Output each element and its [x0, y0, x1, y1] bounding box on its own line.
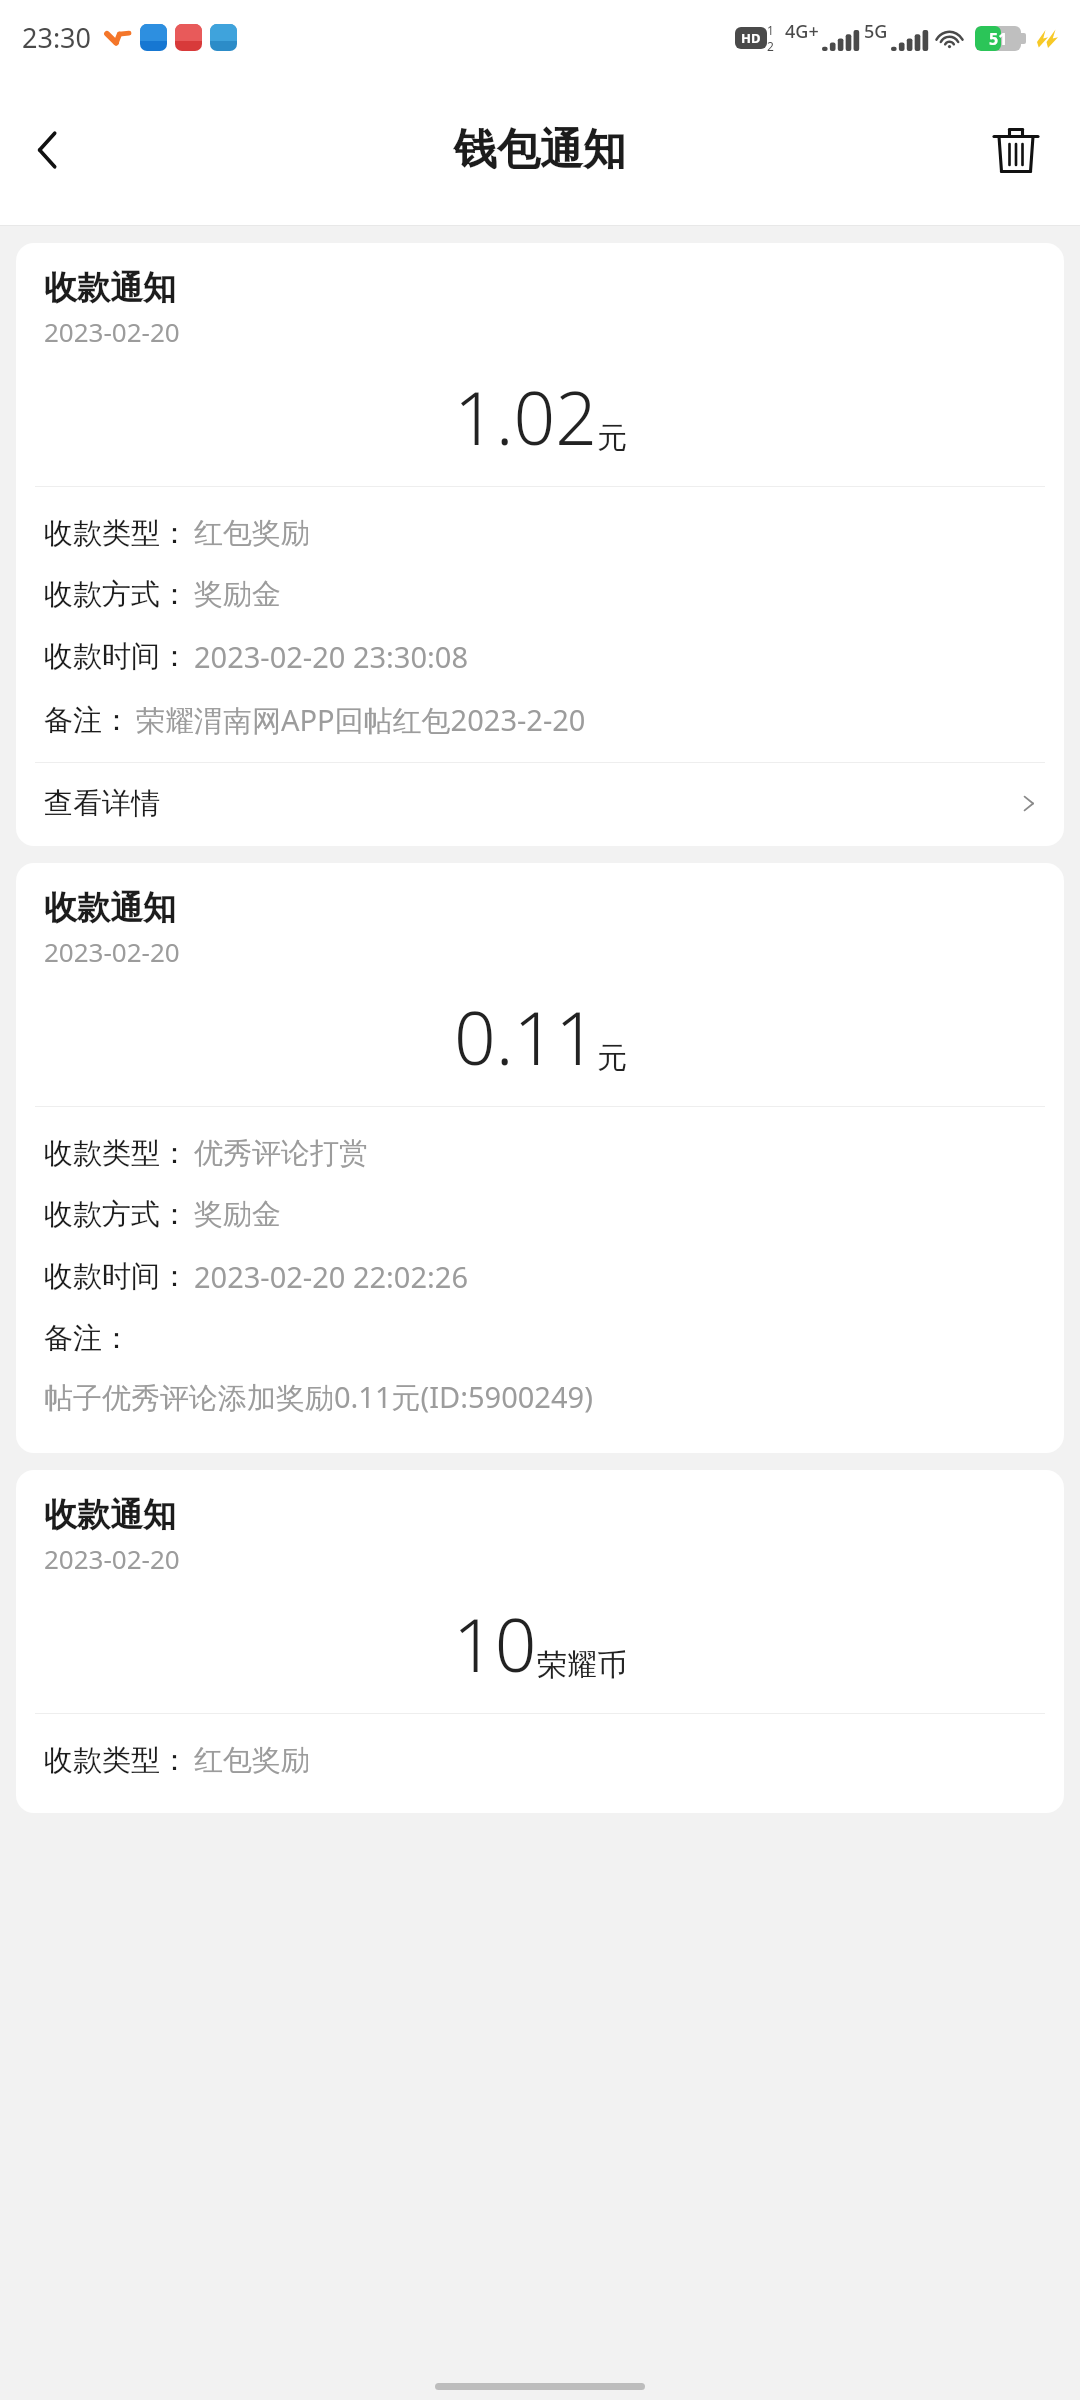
staticText: 2023-02-20 23:30:08	[194, 637, 468, 676]
staticText: 0.11	[454, 987, 597, 1086]
staticText: 收款方式：	[44, 1196, 189, 1233]
staticText: 备注：	[44, 1320, 131, 1357]
staticText: 1.02	[454, 367, 597, 466]
staticText: 元	[597, 419, 627, 457]
staticText: 5G	[864, 19, 888, 44]
staticText: 4G+	[785, 19, 819, 44]
staticText: 红包奖励	[194, 1742, 310, 1779]
staticText: 备注：	[44, 702, 131, 739]
staticText: 1	[767, 22, 774, 38]
staticText: 收款通知	[44, 887, 176, 929]
staticText: 收款类型：	[44, 1742, 189, 1779]
staticText: HD	[741, 29, 761, 47]
staticText: 2023-02-20	[44, 934, 180, 969]
staticText: 2023-02-20	[44, 314, 180, 349]
staticText: 收款方式：	[44, 576, 189, 613]
button[interactable]: 收款通知	[16, 1470, 1064, 1813]
staticText: 收款类型：	[44, 1135, 189, 1172]
staticText: 23:30	[22, 19, 92, 56]
staticText: 荣耀渭南网APP回帖红包2023-2-20	[136, 700, 586, 740]
staticText: 元	[597, 1039, 627, 1077]
button[interactable]: 收款通知	[16, 863, 1064, 1453]
staticText: 收款类型：	[44, 515, 189, 552]
staticText: 收款通知	[44, 1494, 176, 1536]
staticText: 奖励金	[194, 576, 281, 613]
button[interactable]: Delete	[972, 106, 1060, 194]
staticText: 优秀评论打赏	[194, 1135, 368, 1172]
button[interactable]: Back	[0, 102, 96, 198]
staticText: 红包奖励	[194, 515, 310, 552]
staticText: 收款时间：	[44, 1258, 189, 1295]
staticText: 帖子优秀评论添加奖励0.11元(ID:5900249)	[44, 1377, 593, 1417]
staticText: 10	[453, 1594, 537, 1693]
staticText: 51	[989, 28, 1008, 50]
button[interactable]: 收款通知	[16, 243, 1064, 846]
staticText: 2023-02-20 22:02:26	[194, 1257, 468, 1296]
button[interactable]: 查看详情	[25, 763, 1055, 846]
staticText: 2023-02-20	[44, 1541, 180, 1576]
staticText: 钱包通知	[454, 123, 626, 177]
staticText: 查看详情	[44, 785, 160, 822]
staticText: 收款时间：	[44, 638, 189, 675]
staticText: 收款通知	[44, 267, 176, 309]
staticText: 荣耀币	[537, 1646, 627, 1684]
staticText: 2	[767, 38, 774, 54]
staticText: 奖励金	[194, 1196, 281, 1233]
